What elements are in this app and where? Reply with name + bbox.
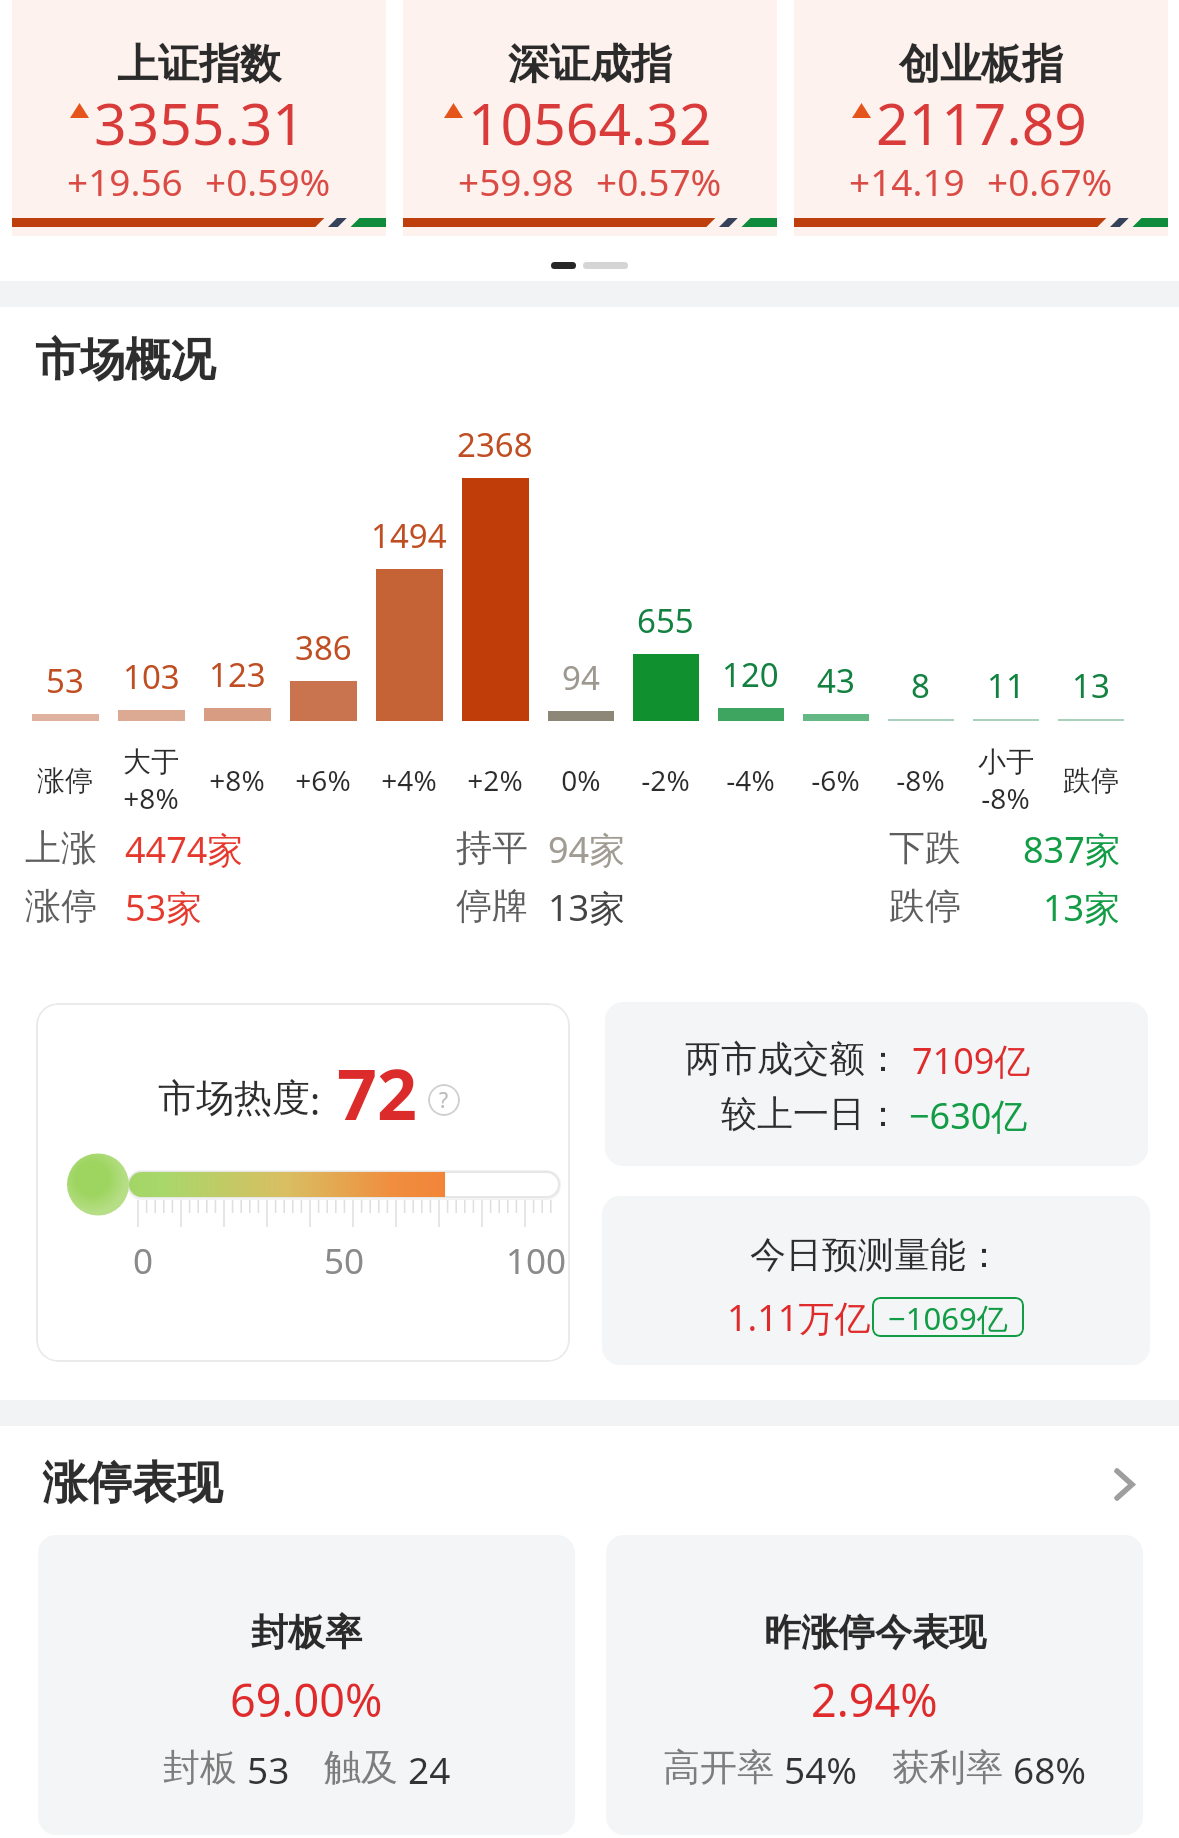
staticText: +8%	[209, 761, 265, 799]
staticText: 今日预测量能：	[750, 1232, 1002, 1277]
staticText: 市场概况	[35, 332, 215, 389]
staticText: 触及	[324, 1744, 398, 1791]
staticText: 深证成指	[508, 39, 672, 91]
button[interactable]: 涨停表现	[42, 1455, 1141, 1517]
staticText: 1494	[371, 513, 447, 558]
staticText: 小于	[978, 744, 1034, 779]
staticText: +4%	[381, 761, 437, 799]
staticText: +6%	[295, 761, 351, 799]
staticText: 50	[314, 1237, 374, 1285]
staticText: 8	[911, 663, 930, 708]
staticText: 24	[408, 1744, 451, 1794]
button[interactable]: 封板率	[38, 1535, 575, 1835]
staticText: 两市成交额：	[685, 1036, 901, 1081]
staticText: 封板率	[251, 1609, 362, 1656]
staticText: 655	[637, 598, 694, 643]
staticText: 封板	[163, 1744, 237, 1791]
staticText: 跌停	[1063, 763, 1119, 798]
staticText: 昨涨停今表现	[764, 1609, 986, 1656]
staticText: -2%	[641, 761, 690, 799]
staticText: 94	[562, 655, 600, 700]
staticText: 69.00%	[230, 1669, 383, 1730]
staticText: 837家	[1023, 825, 1121, 874]
button[interactable]: 上证指数	[12, 0, 386, 236]
staticText: :	[310, 1074, 321, 1126]
button[interactable]: 两市成交额：	[605, 1002, 1148, 1166]
staticText: 高开率	[663, 1744, 774, 1791]
staticText: 获利率	[892, 1744, 1003, 1791]
staticText: 120	[722, 652, 779, 697]
staticText: +14.19	[849, 156, 965, 206]
staticText: 13家	[1043, 883, 1121, 932]
staticText: ?	[439, 1086, 449, 1115]
staticText: +19.56	[67, 156, 183, 206]
button[interactable]: 创业板指	[794, 0, 1168, 236]
staticText: 持平	[456, 825, 528, 870]
staticText: 13家	[548, 883, 626, 932]
staticText: 上证指数	[117, 39, 281, 91]
staticText: 100	[501, 1237, 570, 1285]
staticText: 2.94%	[811, 1669, 938, 1730]
staticText: 市场热度	[158, 1074, 310, 1122]
staticText: 停牌	[456, 883, 528, 928]
staticText: +0.67%	[987, 156, 1113, 206]
staticText: 涨停	[37, 763, 93, 798]
staticText: 11	[987, 663, 1025, 708]
staticText: 2368	[457, 422, 533, 467]
staticText: 13	[1072, 663, 1110, 708]
staticText: 2117.89	[876, 84, 1087, 162]
staticText: +0.59%	[205, 156, 331, 206]
staticText: 94家	[548, 825, 626, 874]
staticText: 68%	[1013, 1744, 1087, 1794]
staticText: −1069亿	[888, 1297, 1008, 1337]
staticText: 123	[209, 652, 266, 697]
staticText: +0.57%	[596, 156, 722, 206]
button[interactable]: 昨涨停今表现	[606, 1535, 1143, 1835]
staticText: -6%	[811, 761, 860, 799]
staticText: 上涨	[25, 825, 97, 870]
other: 查看更多	[1114, 1468, 1136, 1501]
staticText: 跌停	[889, 883, 961, 928]
staticText: +59.98	[458, 156, 574, 206]
staticText: 1.11万亿	[727, 1293, 871, 1342]
staticText: 53	[247, 1744, 290, 1794]
staticText: +8%	[123, 779, 179, 817]
staticText: 3355.31	[94, 84, 305, 162]
staticText: 53	[46, 658, 84, 703]
button[interactable]: 市场热度	[36, 1003, 570, 1362]
staticText: 大于	[123, 744, 179, 779]
staticText: −630亿	[909, 1091, 1028, 1140]
button[interactable]: 今日预测量能：	[602, 1196, 1150, 1365]
staticText: 涨停表现	[42, 1455, 222, 1512]
staticText: 4474家	[125, 825, 244, 874]
staticText: +2%	[467, 761, 523, 799]
staticText: -8%	[896, 761, 945, 799]
staticText: 7109亿	[912, 1036, 1031, 1085]
staticText: 涨停	[25, 883, 97, 928]
staticText: 10564.32	[468, 84, 712, 162]
staticText: -8%	[981, 779, 1030, 817]
staticText: 103	[123, 654, 180, 699]
staticText: 创业板指	[899, 39, 1063, 91]
staticText: -4%	[726, 761, 775, 799]
staticText: 72	[337, 1045, 418, 1140]
staticText: 0	[113, 1237, 173, 1285]
staticText: 0%	[561, 761, 601, 799]
staticText: 43	[817, 658, 855, 703]
staticText: 较上一日：	[721, 1091, 901, 1136]
button[interactable]: 深证成指	[403, 0, 777, 236]
staticText: 54%	[784, 1744, 858, 1794]
staticText: 下跌	[889, 825, 961, 870]
staticText: 386	[295, 625, 352, 670]
staticText: 53家	[125, 883, 203, 932]
